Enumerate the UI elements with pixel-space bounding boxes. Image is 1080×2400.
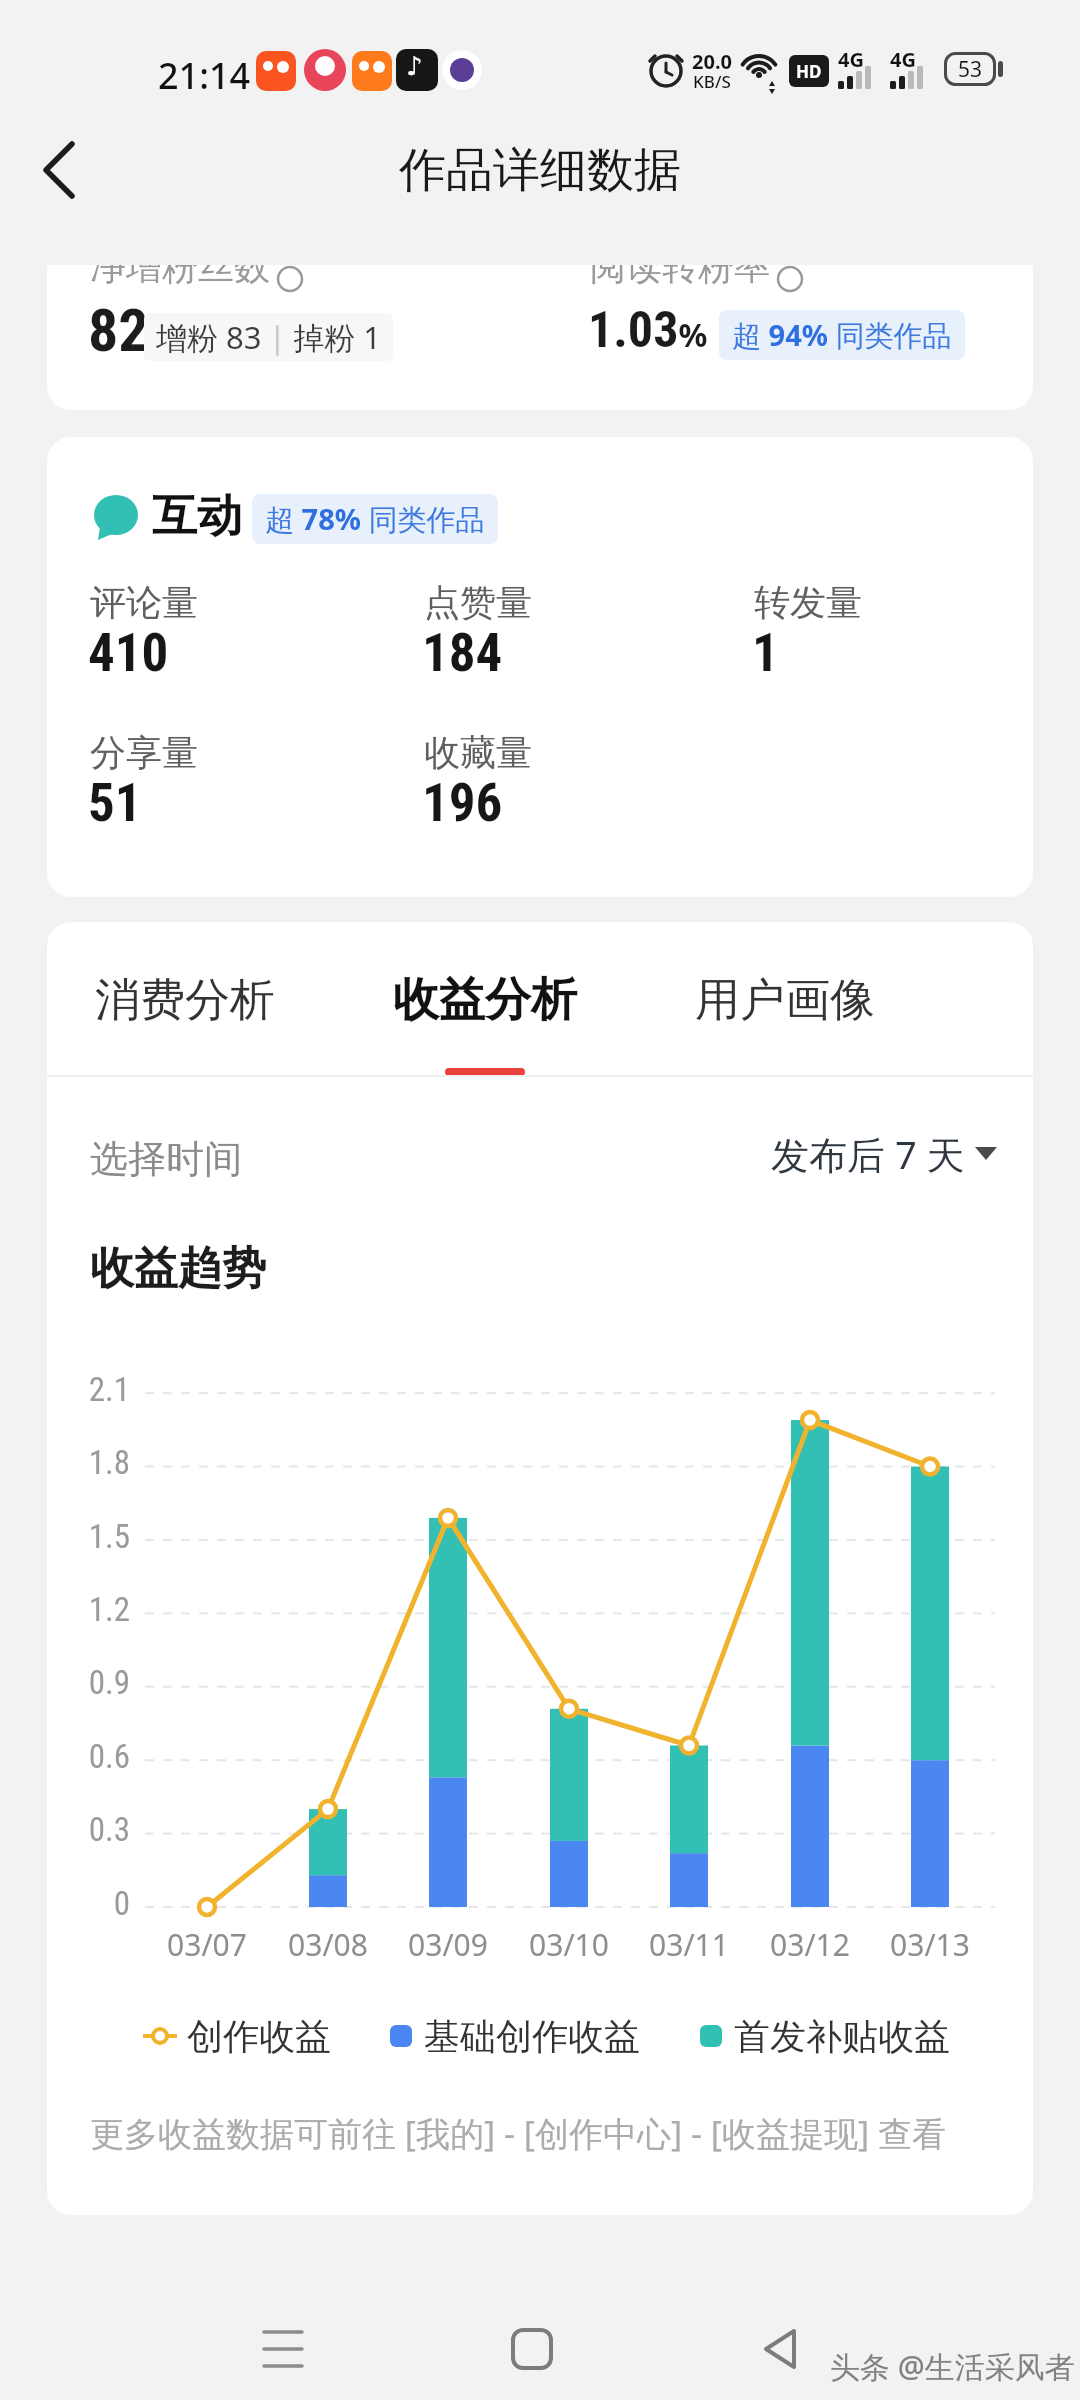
- staticText: 0.9: [60, 1663, 130, 1702]
- staticText: 03/11: [634, 1924, 744, 1965]
- staticText: 51: [88, 772, 142, 834]
- staticText: 创作收益: [187, 2014, 331, 2059]
- staticText: 超 78% 同类作品: [265, 499, 485, 539]
- staticText: KB/S: [688, 70, 736, 93]
- staticText: 03/08: [273, 1924, 383, 1965]
- staticText: 转发量: [754, 580, 862, 625]
- staticText: 0: [60, 1884, 130, 1923]
- staticText: 20.0: [688, 48, 736, 75]
- staticText: 点赞量: [424, 580, 532, 625]
- staticText: 410: [88, 622, 169, 684]
- staticText: 1.8: [60, 1443, 130, 1482]
- staticText: ♪: [406, 51, 423, 81]
- staticText: 4G: [838, 46, 864, 73]
- staticText: 更多收益数据可前往 [我的] - [创作中心] - [收益提现] 查看: [90, 2110, 947, 2156]
- staticText: 头条 @生活采风者: [830, 2346, 1075, 2387]
- staticText: 收益趋势: [90, 1241, 266, 1296]
- staticText: 1: [752, 622, 779, 684]
- staticText: 评论量: [90, 580, 198, 625]
- staticText: 增粉 83 ∣ 掉粉 1: [156, 316, 381, 358]
- staticText: 0.3: [60, 1810, 130, 1849]
- staticText: 收藏量: [424, 730, 532, 775]
- button[interactable]: 用户画像: [670, 955, 900, 1045]
- button[interactable]: [245, 2312, 321, 2388]
- staticText: HD: [796, 60, 822, 83]
- staticText: 分享量: [90, 730, 198, 775]
- staticText: 基础创作收益: [424, 2014, 640, 2059]
- staticText: 1.2: [60, 1590, 130, 1629]
- staticText: 发布后 7 天: [771, 1128, 965, 1180]
- staticText: 1.5: [60, 1517, 130, 1556]
- button[interactable]: 发布后 7 天: [747, 1122, 997, 1186]
- button[interactable]: [28, 140, 88, 200]
- staticText: 首发补贴收益: [734, 2014, 950, 2059]
- staticText: 净增粉丝数: [90, 265, 270, 289]
- staticText: 互动: [152, 488, 242, 545]
- staticText: 03/07: [152, 1924, 262, 1965]
- staticText: 03/09: [393, 1924, 503, 1965]
- staticText: 选择时间: [90, 1135, 242, 1183]
- staticText: 作品详细数据: [0, 141, 1080, 200]
- staticText: 消费分析: [95, 972, 275, 1029]
- staticText: 阅读转粉率: [590, 265, 770, 289]
- staticText: 0.6: [60, 1737, 130, 1776]
- button[interactable]: 消费分析: [70, 955, 300, 1045]
- button[interactable]: 收益分析: [370, 955, 600, 1045]
- staticText: 196: [422, 772, 503, 834]
- staticText: 184: [422, 622, 503, 684]
- staticText: 03/10: [514, 1924, 624, 1965]
- staticText: 收益分析: [393, 971, 577, 1029]
- button[interactable]: [742, 2312, 818, 2388]
- staticText: 82: [88, 295, 149, 365]
- staticText: 2.1: [60, 1370, 130, 1409]
- staticText: 1.03%: [588, 301, 708, 360]
- button[interactable]: [494, 2312, 570, 2388]
- staticText: 超 94% 同类作品: [732, 315, 952, 355]
- staticText: 4G: [890, 46, 916, 73]
- staticText: 53: [958, 55, 983, 84]
- staticText: 用户画像: [695, 972, 875, 1029]
- staticText: 03/12: [755, 1924, 865, 1965]
- staticText: 21:14: [158, 51, 251, 100]
- staticText: 03/13: [875, 1924, 985, 1965]
